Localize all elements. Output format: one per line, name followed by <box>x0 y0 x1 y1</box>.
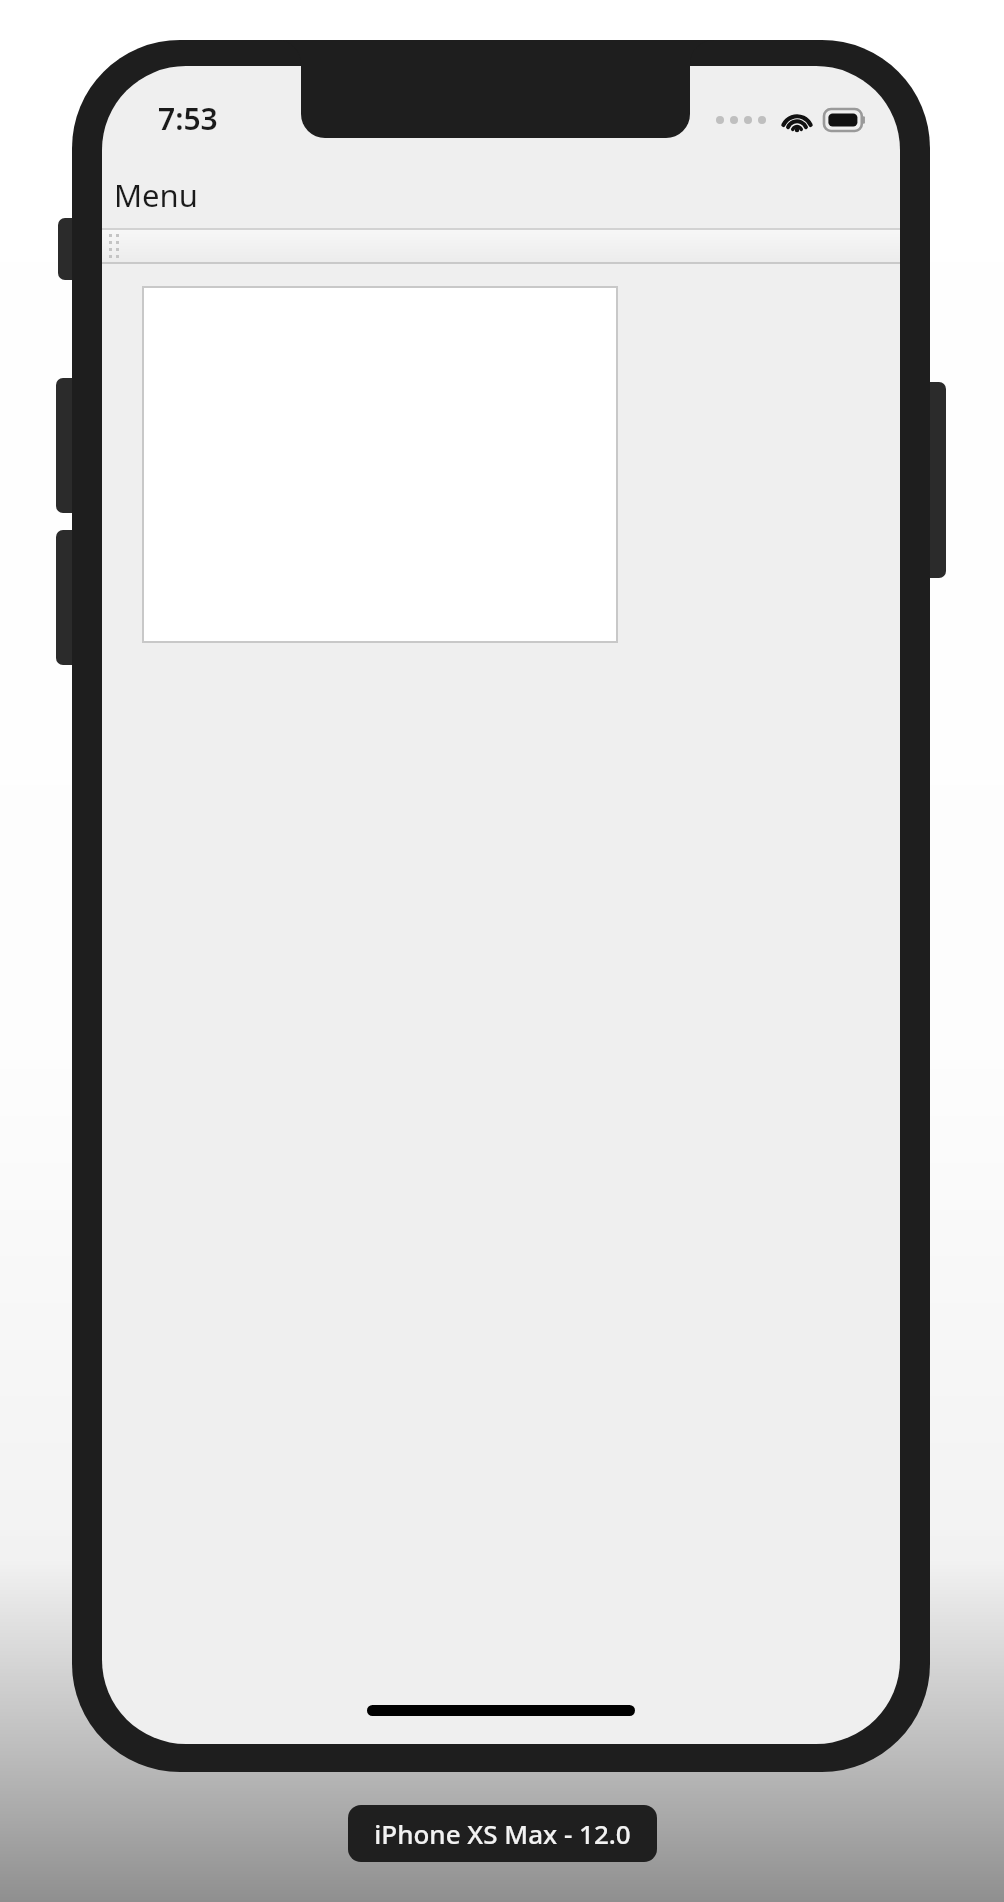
button[interactable]: Drag handle <box>105 232 123 260</box>
button[interactable] <box>142 286 618 643</box>
staticText: Menu <box>114 174 198 216</box>
button[interactable]: iPhone XS Max - 12.0 <box>348 1805 657 1862</box>
staticText: 7:53 <box>158 98 218 139</box>
staticText: iPhone XS Max - 12.0 <box>374 1816 631 1851</box>
